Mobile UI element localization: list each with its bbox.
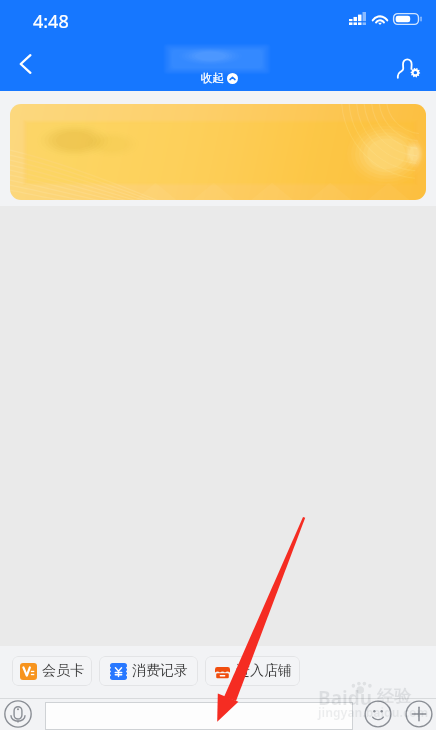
button[interactable]: Emoji	[364, 700, 392, 728]
button[interactable]: 进入店铺	[205, 656, 300, 686]
staticText: 消费记录	[132, 662, 188, 680]
staticText: 4:48	[33, 9, 69, 34]
button[interactable]	[10, 104, 426, 200]
staticText: jingyan.baidu.com	[318, 704, 429, 720]
button[interactable]: Back	[4, 42, 48, 86]
button[interactable]: More	[405, 700, 433, 728]
staticText: 进入店铺	[236, 662, 292, 680]
button[interactable]: Voice input	[4, 700, 32, 728]
staticText: Baidu	[318, 685, 373, 711]
staticText: 会员卡	[42, 662, 84, 680]
button[interactable]	[45, 702, 353, 730]
staticText: 收起	[201, 71, 224, 85]
button[interactable]: Profile settings	[387, 41, 431, 85]
button[interactable]: 消费记录	[99, 656, 198, 686]
button[interactable]: 会员卡	[12, 656, 92, 686]
button[interactable]: 收起	[201, 70, 238, 86]
staticText: 经验	[377, 686, 411, 707]
